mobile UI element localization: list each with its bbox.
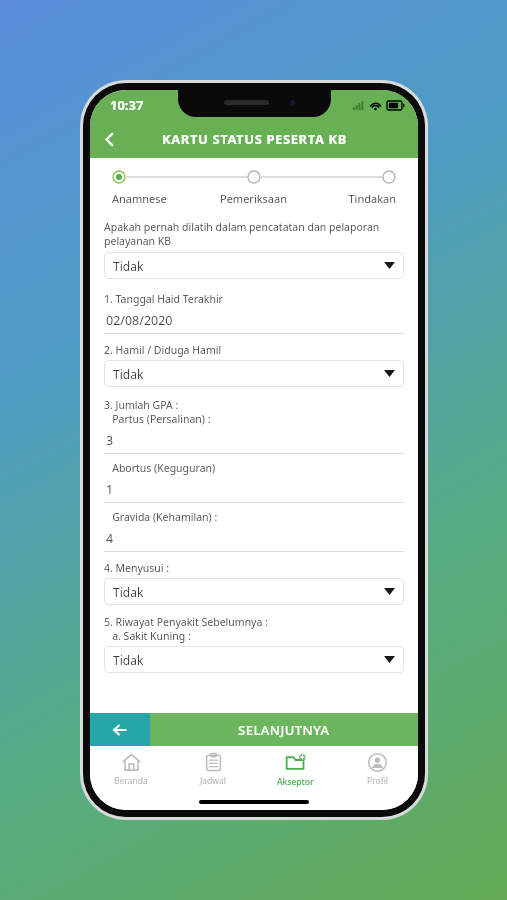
- staticText: a. Sakit Kuning :: [104, 629, 191, 643]
- staticText: SELANJUTNYA: [238, 721, 330, 739]
- staticText: Profil: [367, 775, 388, 787]
- staticText: Pemeriksaan: [206, 191, 301, 206]
- staticText: Tidak: [113, 366, 144, 382]
- staticText: Beranda: [114, 775, 148, 787]
- staticText: Abortus (Keguguran): [104, 461, 216, 475]
- staticText: Tindakan: [301, 191, 396, 206]
- button[interactable]: Back: [90, 120, 128, 158]
- staticText: 1. Tanggal Haid Terakhir: [104, 292, 223, 306]
- staticText: 1: [106, 481, 114, 498]
- staticText: 02/08/2020: [106, 312, 173, 329]
- staticText: Partus (Persalinan) :: [104, 412, 211, 426]
- staticText: Tidak: [113, 584, 144, 600]
- staticText: 10:37: [110, 96, 144, 114]
- button[interactable]: Tidak: [104, 646, 404, 673]
- button[interactable]: Jadwal: [172, 746, 254, 794]
- staticText: 4: [106, 530, 114, 547]
- staticText: 3: [106, 432, 114, 449]
- staticText: KARTU STATUS PESERTA KB: [162, 130, 347, 148]
- staticText: 3. Jumlah GPA :: [104, 398, 179, 412]
- staticText: 5. Riwayat Penyakit Sebelumnya :: [104, 615, 268, 629]
- button[interactable]: Tidak: [104, 360, 404, 387]
- button[interactable]: Beranda: [90, 746, 172, 794]
- button[interactable]: Profil: [336, 746, 418, 794]
- staticText: pelayanan KB: [104, 234, 172, 248]
- staticText: Akseptor: [277, 776, 314, 788]
- staticText: 4. Menyusui :: [104, 561, 170, 575]
- staticText: Apakah pernah dilatih dalam pencatatan d…: [104, 220, 380, 234]
- button[interactable]: Tidak: [104, 252, 404, 279]
- staticText: Gravida (Kehamilan) :: [104, 510, 218, 524]
- staticText: Anamnese: [112, 191, 206, 206]
- button[interactable]: SELANJUTNYA: [150, 713, 418, 746]
- button[interactable]: Tidak: [104, 578, 404, 605]
- staticText: 2. Hamil / Diduga Hamil: [104, 343, 222, 357]
- button[interactable]: Kembali: [90, 713, 150, 746]
- staticText: Jadwal: [200, 775, 226, 787]
- button[interactable]: Akseptor: [254, 746, 336, 794]
- staticText: Tidak: [113, 258, 144, 274]
- staticText: Tidak: [113, 652, 144, 668]
